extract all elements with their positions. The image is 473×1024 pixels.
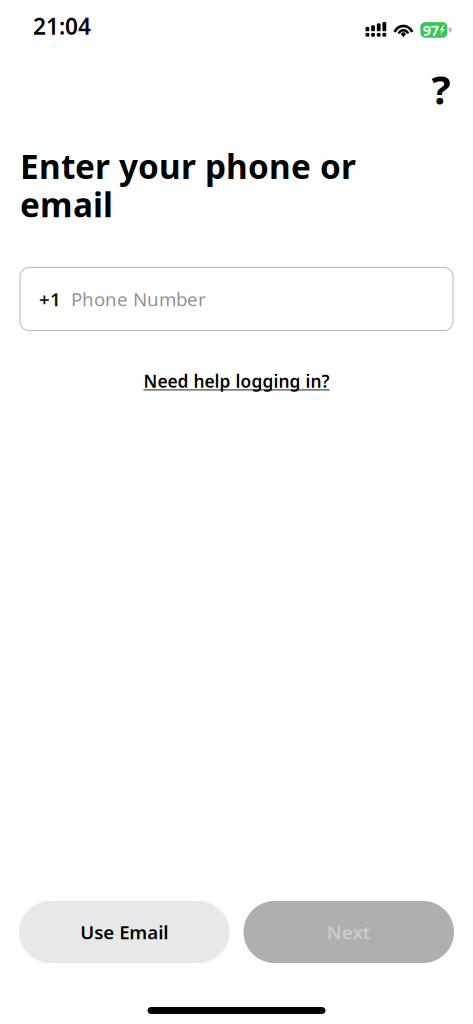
button[interactable]: +1	[20, 267, 453, 330]
button[interactable]: Help	[419, 50, 463, 111]
button[interactable]: Need help logging in?	[131, 360, 341, 401]
staticText: 97	[423, 20, 439, 40]
button[interactable]: Use Email	[19, 901, 229, 963]
staticText: 21:04	[33, 11, 91, 41]
staticText: +1	[39, 287, 61, 311]
button[interactable]: Next	[243, 901, 454, 963]
staticText: Next	[327, 920, 371, 944]
staticText: Use Email	[80, 920, 168, 944]
staticText: Enter your phone or email	[20, 144, 356, 226]
staticText: Phone Number	[71, 287, 206, 311]
staticText: ?	[431, 62, 450, 115]
staticText: Need help logging in?	[143, 369, 329, 392]
